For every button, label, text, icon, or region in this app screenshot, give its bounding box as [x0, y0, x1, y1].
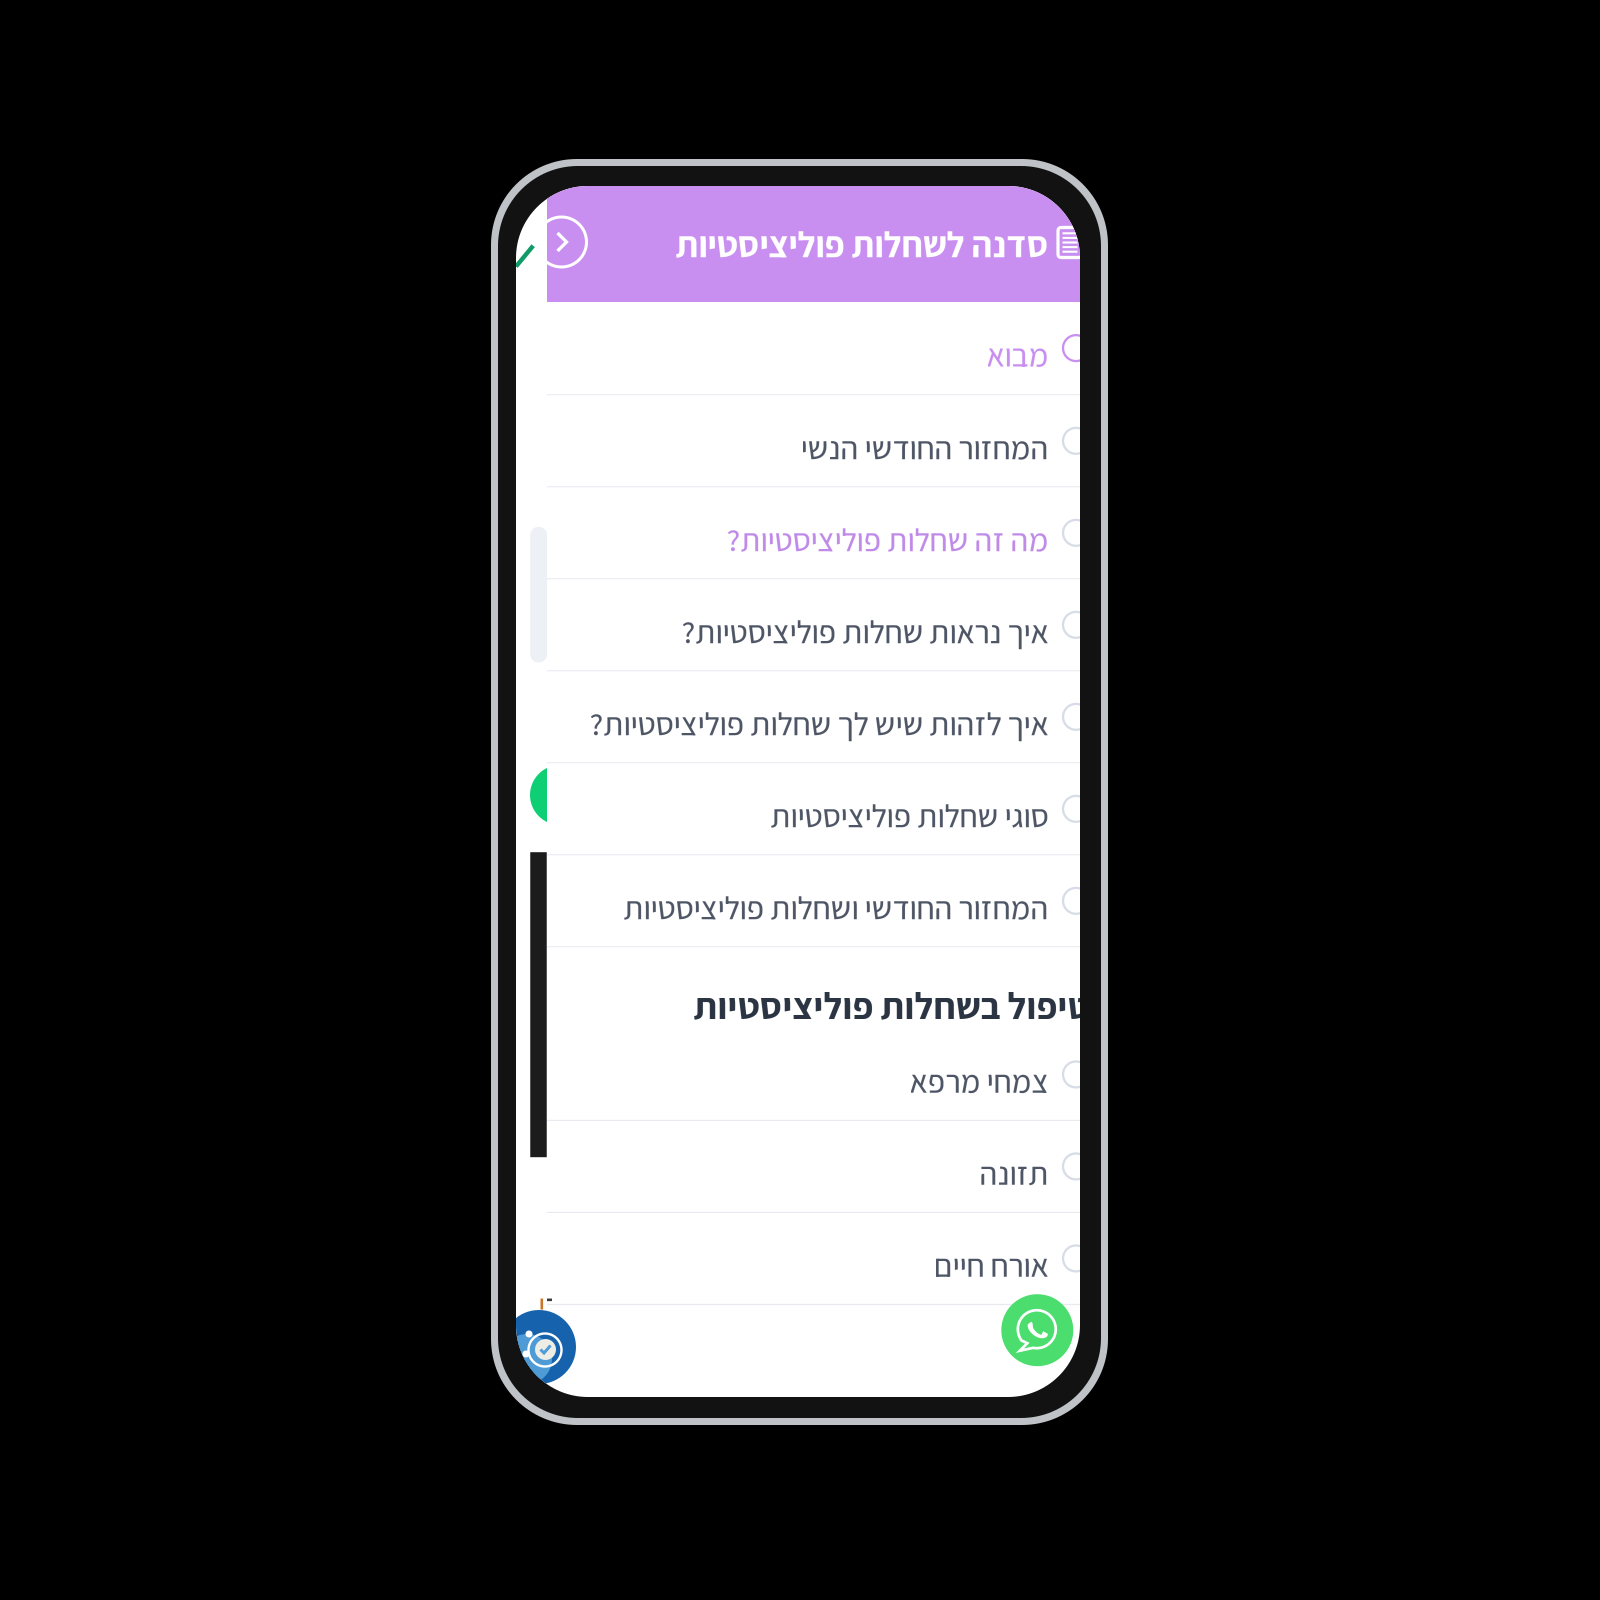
- button[interactable]: מה זה שחלות פוליציסטיות?: [547, 487, 1089, 578]
- button[interactable]: איך נראות שחלות פוליציסטיות?: [547, 579, 1089, 670]
- button[interactable]: מבוא: [547, 302, 1089, 394]
- staticText: צמחי מרפא: [909, 1060, 1048, 1102]
- button[interactable]: אורח חיים: [547, 1213, 1089, 1304]
- button[interactable]: איך לזהות שיש לך שחלות פוליציסטיות?: [547, 671, 1089, 762]
- staticText: המחזור החודשי הנשי: [800, 426, 1048, 468]
- button[interactable]: המחזור החודשי הנשי: [547, 395, 1089, 486]
- button[interactable]: המחזור החודשי ושחלות פוליציסטיות: [547, 855, 1089, 946]
- button[interactable]: Next lesson: [532, 213, 590, 271]
- staticText: איך נראות שחלות פוליציסטיות?: [681, 610, 1048, 652]
- staticText: תזונה: [979, 1152, 1048, 1194]
- staticText: מבוא: [986, 333, 1048, 376]
- staticText: סוגי שחלות פוליציסטיות: [770, 794, 1048, 836]
- button[interactable]: סוגי שחלות פוליציסטיות: [547, 763, 1089, 854]
- button[interactable]: Lesson notes: [1055, 224, 1085, 264]
- button[interactable]: Chat on WhatsApp: [1001, 1294, 1073, 1366]
- button[interactable]: תזונה: [547, 1121, 1089, 1212]
- staticText: טיפול בשחלות פוליציסטיות: [693, 981, 1089, 1030]
- staticText: המחזור החודשי ושחלות פוליציסטיות: [623, 886, 1048, 928]
- button[interactable]: צמחי מרפא: [547, 1029, 1089, 1120]
- staticText: מה זה שחלות פוליציסטיות?: [726, 518, 1048, 560]
- staticText: איך לזהות שיש לך שחלות פוליציסטיות?: [589, 702, 1048, 744]
- staticText: סדנה לשחלות פוליציסטיות: [675, 220, 1048, 268]
- button[interactable]: Accessibility options: [502, 1310, 576, 1384]
- staticText: אורח חיים: [933, 1244, 1048, 1286]
